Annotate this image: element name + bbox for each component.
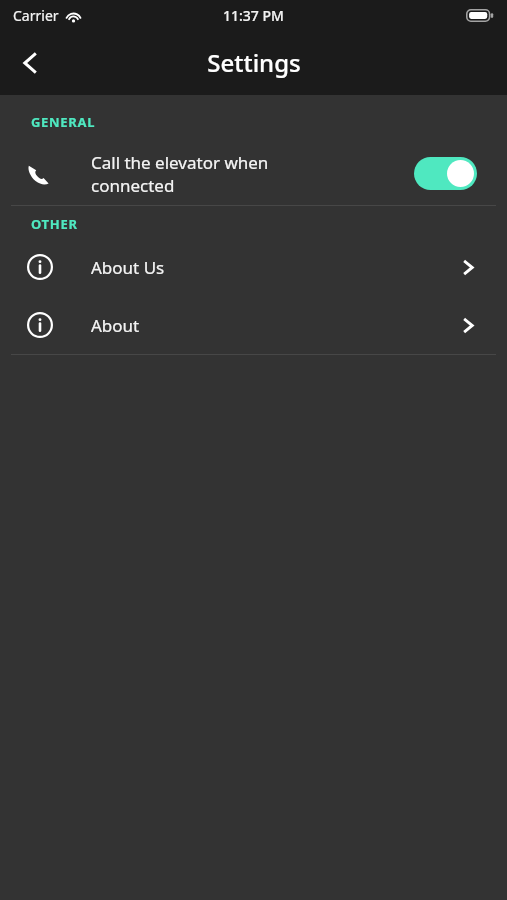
staticText: Call the elevator when connected [91, 151, 406, 197]
button[interactable]: Call the elevator when connected [0, 142, 507, 205]
staticText: Settings [207, 46, 301, 79]
staticText: OTHER [31, 215, 78, 233]
button[interactable]: About Us [0, 238, 507, 296]
button[interactable]: Toggle call the elevator when connected [414, 157, 477, 190]
staticText: GENERAL [31, 113, 96, 131]
staticText: About Us [91, 256, 460, 279]
button[interactable]: About [0, 296, 507, 354]
staticText: 11:37 PM [223, 6, 284, 25]
staticText: Carrier [13, 6, 59, 25]
button[interactable]: Back [4, 37, 56, 89]
staticText: About [91, 314, 460, 337]
